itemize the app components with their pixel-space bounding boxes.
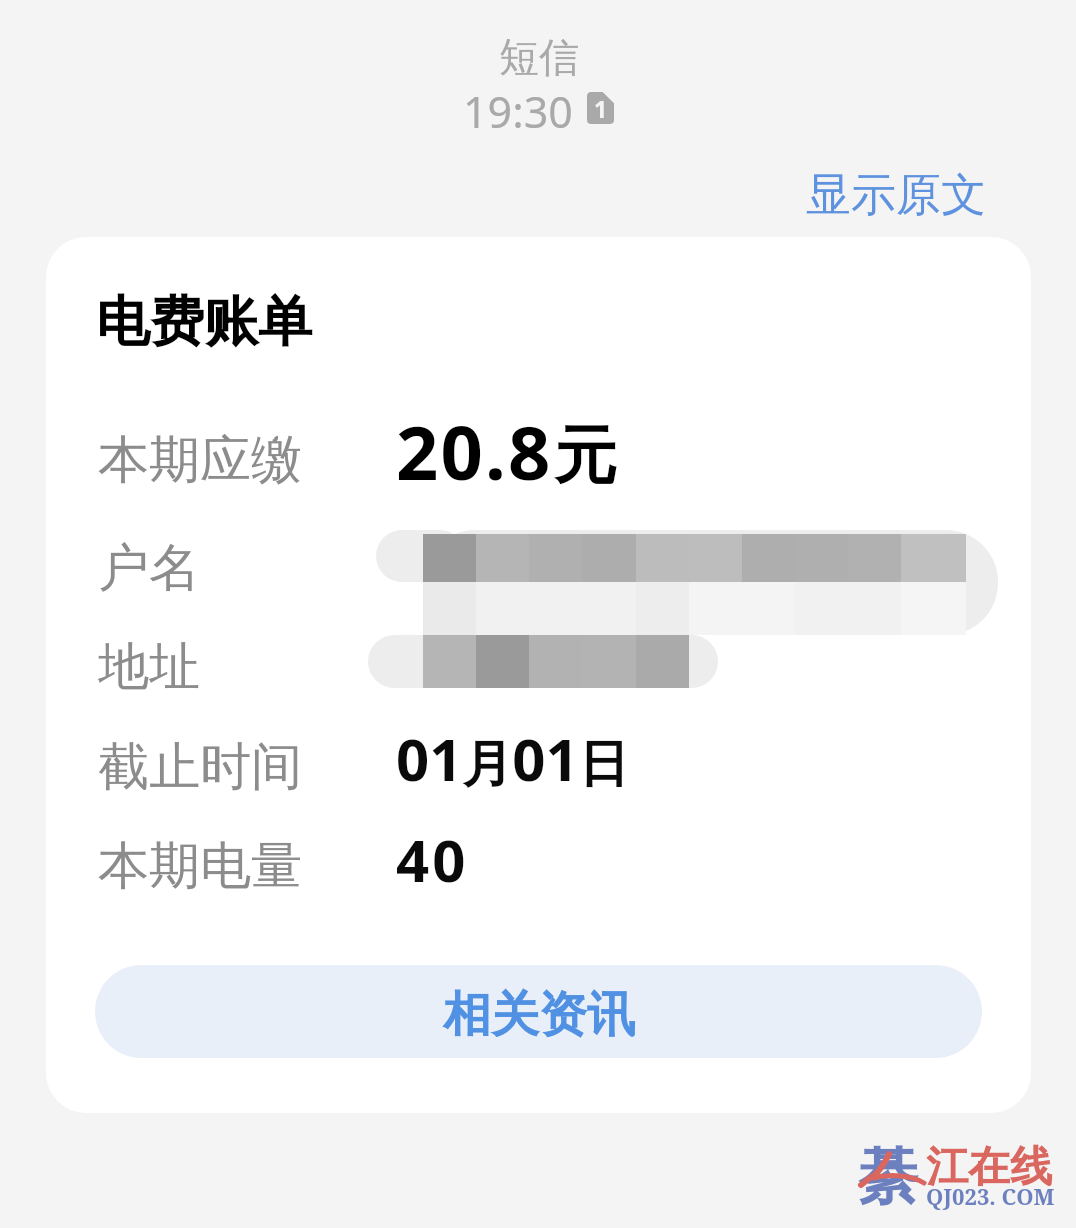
staticText: 相关资讯 [443, 985, 635, 1045]
staticText: 短信 [499, 32, 579, 82]
staticText: 显示原文 [806, 167, 986, 224]
button[interactable]: 显示原文 [800, 159, 992, 232]
staticText: 40 [396, 820, 469, 899]
button[interactable]: 相关资讯 [95, 965, 982, 1058]
staticText: 本期应缴 [98, 428, 302, 492]
staticText: 截止时间 [98, 735, 302, 799]
staticText: 户名 [98, 536, 200, 600]
button[interactable]: 电费账单 [46, 237, 1031, 1113]
other: SIM 1 [587, 92, 614, 124]
staticText: 元 [554, 416, 617, 495]
staticText: 地址 [98, 635, 200, 699]
staticText: 20.8 [396, 401, 553, 502]
staticText: 本期电量 [98, 834, 302, 898]
staticText: 1 [594, 93, 608, 124]
staticText: 19:30 [463, 82, 573, 141]
staticText: 綦 [858, 1139, 918, 1215]
staticText: 01月01日 [396, 719, 629, 798]
staticText: QJ023. COM [926, 1181, 1055, 1211]
staticText: 电费账单 [96, 288, 312, 356]
staticText: 江在线 [926, 1141, 1052, 1194]
